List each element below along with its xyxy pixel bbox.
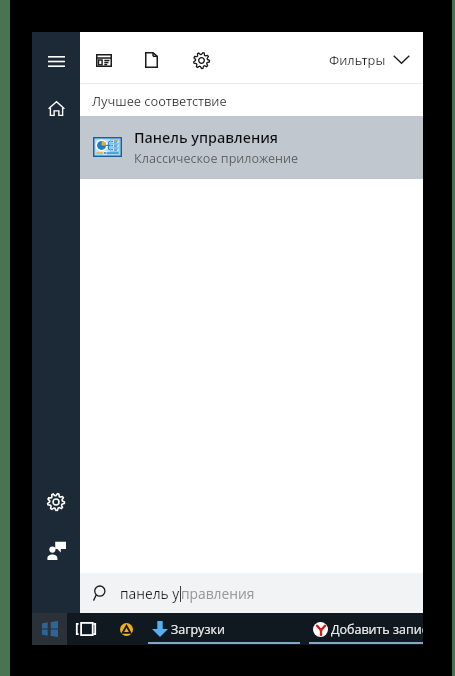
button[interactable]: AIMP — [105, 613, 147, 645]
button[interactable]: Settings — [32, 482, 80, 522]
staticText: Фильтры — [329, 51, 386, 68]
button[interactable]: Documents — [128, 38, 174, 82]
button[interactable]: Start — [32, 613, 67, 645]
button[interactable]: Apps — [81, 38, 127, 82]
button[interactable]: Home — [32, 90, 80, 126]
button[interactable]: панель у — [80, 573, 423, 613]
button[interactable]: Feedback — [32, 530, 80, 570]
staticText: правления — [181, 584, 255, 603]
staticText: Добавить запись — [331, 621, 423, 638]
button[interactable]: Панель управления — [80, 116, 423, 179]
staticText: Загрузки — [171, 621, 225, 638]
staticText: панель у — [120, 584, 180, 603]
button[interactable]: Settings — [178, 38, 224, 82]
button[interactable]: Menu — [32, 44, 80, 78]
button[interactable]: Фильтры — [321, 43, 418, 76]
button[interactable]: Добавить запись — [309, 613, 423, 645]
button[interactable]: Загрузки — [148, 613, 300, 645]
staticText: Лучшее соответствие — [92, 92, 227, 109]
staticText: Панель управления — [134, 128, 279, 147]
staticText: Классическое приложение — [134, 150, 298, 167]
button[interactable]: Task view — [67, 613, 105, 645]
